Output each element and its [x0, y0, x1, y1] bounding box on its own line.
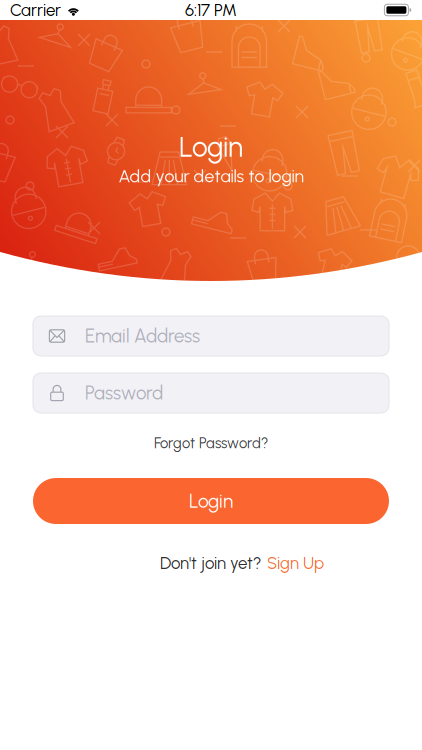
staticText: Email Address — [85, 325, 200, 347]
staticText: 6:17 PM — [185, 0, 237, 20]
button[interactable]: Sign Up — [267, 553, 324, 573]
staticText: Login — [189, 490, 233, 512]
staticText: Sign Up — [267, 553, 324, 573]
staticText: Carrier — [10, 0, 61, 20]
staticText: Forgot Password? — [154, 434, 268, 452]
staticText: Password — [85, 382, 163, 404]
button[interactable]: Login — [0, 478, 422, 524]
staticText: Don't join yet? — [160, 553, 261, 573]
button[interactable]: Forgot Password? — [0, 431, 422, 455]
staticText: Login — [179, 130, 243, 164]
staticText: Add your details to login — [118, 165, 303, 186]
